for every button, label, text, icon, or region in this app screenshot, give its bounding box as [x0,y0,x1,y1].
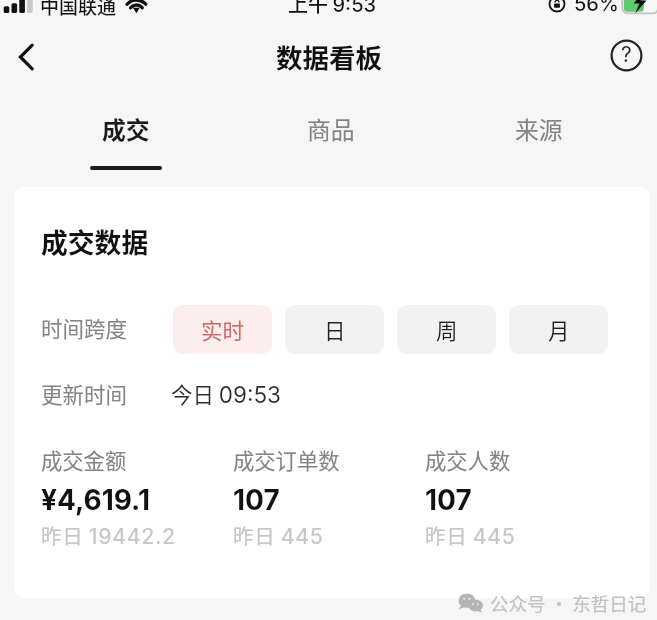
staticText: 时间跨度 [41,312,128,343]
staticText: 中国联通 [40,0,117,18]
button[interactable]: 周 [397,305,496,354]
staticText: 公众号 · 东哲日记 [490,590,647,617]
staticText: ? [621,42,632,67]
staticText: 日 [324,314,346,345]
staticText: 月 [548,314,570,345]
staticText: 成交 [102,111,150,145]
button[interactable]: 日 [285,305,384,354]
staticText: 上午 9:53 [288,0,377,15]
button[interactable]: 商品 [269,100,393,180]
staticText: 107 [425,483,472,517]
staticText: 昨日 19442.2 [41,520,176,550]
staticText: 实时 [201,314,245,345]
button[interactable]: 月 [509,305,608,354]
staticText: 昨日 445 [233,520,324,550]
button[interactable]: 成交 [64,100,188,180]
staticText: 昨日 445 [425,520,516,550]
button[interactable]: Back [0,26,64,88]
staticText: 107 [233,483,280,517]
staticText: 成交人数 [425,444,511,475]
staticText: 今日 09:53 [171,378,282,409]
button[interactable]: Help [593,26,657,88]
staticText: 周 [436,314,458,345]
staticText: 数据看板 [276,37,382,75]
button[interactable]: 实时 [173,305,272,354]
staticText: 成交数据 [41,222,149,261]
staticText: 56% [574,0,619,16]
button[interactable]: 来源 [477,100,601,180]
staticText: 成交金额 [41,444,127,475]
staticText: 成交订单数 [233,444,340,475]
staticText: ¥4,619.1 [41,483,151,517]
staticText: 商品 [307,111,355,145]
staticText: 来源 [515,111,563,145]
staticText: 更新时间 [41,378,128,409]
